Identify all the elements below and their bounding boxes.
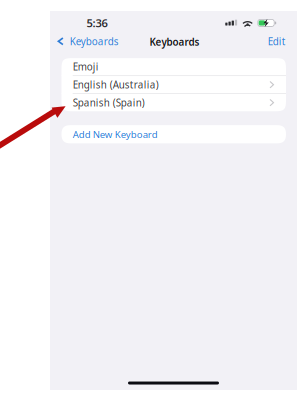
button[interactable]: Keyboards	[50, 33, 124, 50]
button[interactable]: Add New Keyboard	[61, 125, 286, 143]
staticText: Emoji	[73, 60, 99, 73]
staticText: Spanish (Spain)	[73, 96, 145, 109]
staticText: Edit	[268, 35, 286, 48]
staticText: 5:36	[86, 16, 107, 30]
staticText: Keyboards	[149, 35, 199, 48]
button[interactable]: Edit	[247, 33, 297, 50]
staticText: Keyboards	[70, 35, 119, 48]
staticText: Add New Keyboard	[73, 128, 158, 141]
staticText: English (Australia)	[73, 78, 159, 91]
button[interactable]: English (Australia)	[61, 76, 286, 93]
button[interactable]: Spanish (Spain)	[61, 94, 286, 111]
button[interactable]: Emoji	[61, 58, 286, 75]
